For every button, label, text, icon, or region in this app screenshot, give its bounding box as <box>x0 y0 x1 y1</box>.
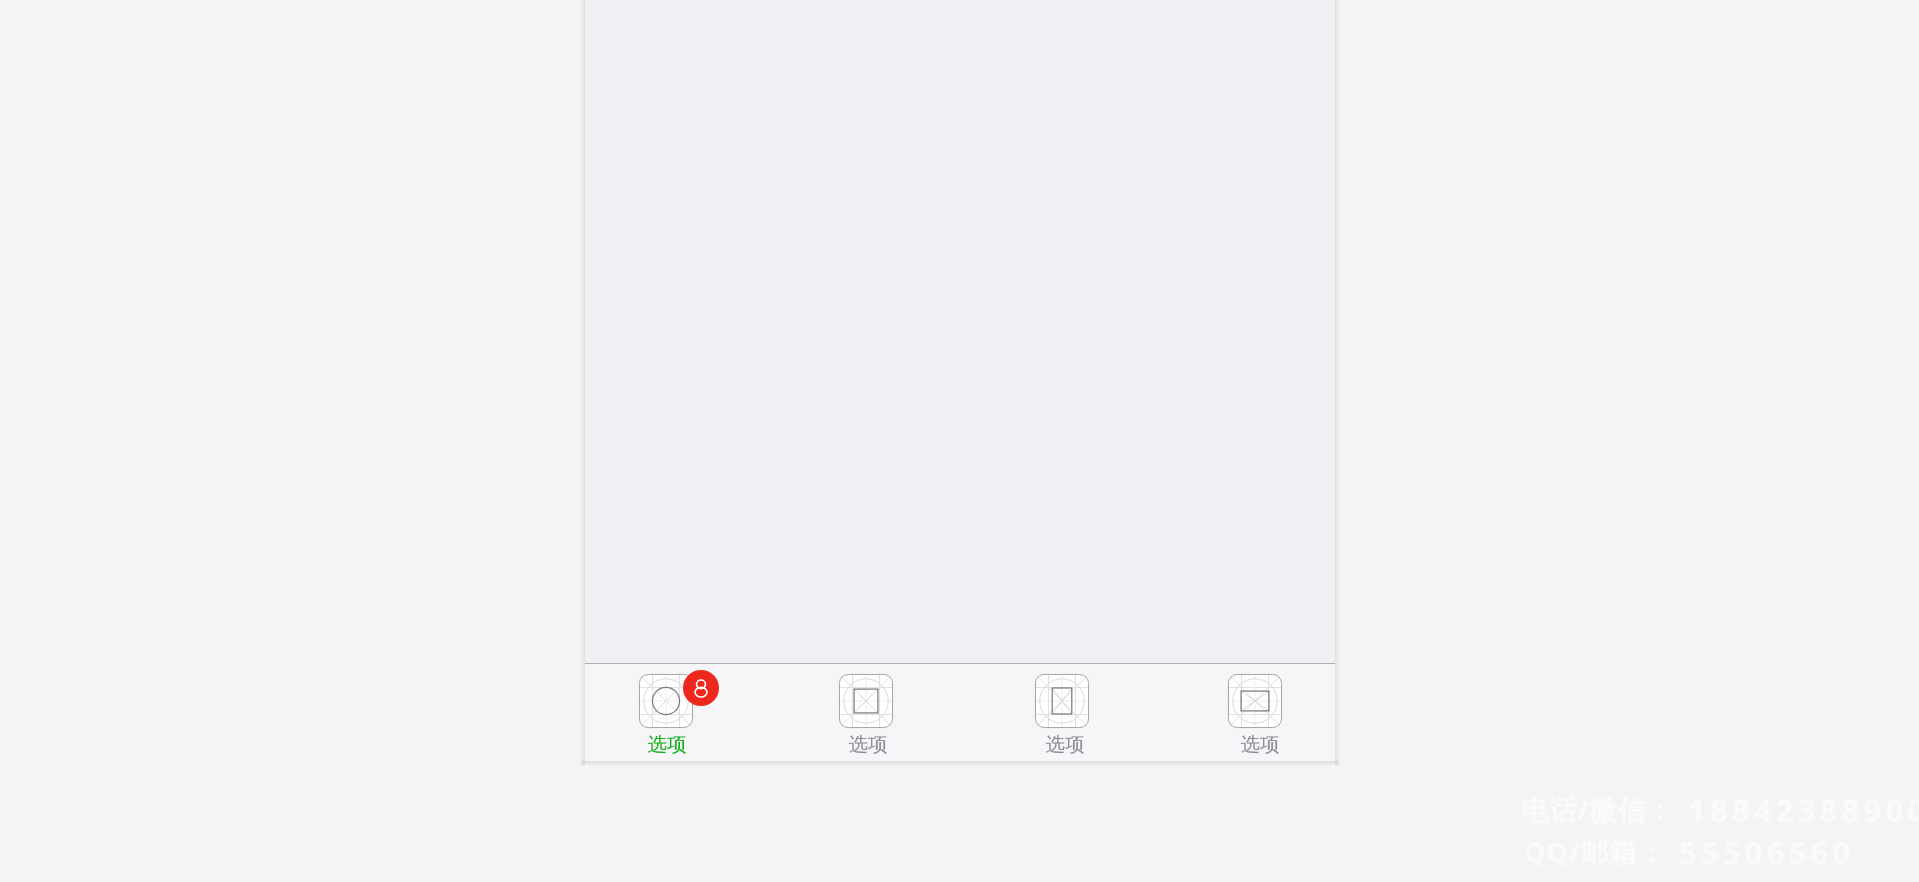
staticText: 选项 <box>848 732 888 757</box>
button[interactable]: 选项 <box>585 664 773 761</box>
staticText: 选项 <box>1240 732 1280 757</box>
staticText: 选项 <box>1045 732 1085 757</box>
button[interactable]: 选项 <box>1148 664 1336 761</box>
button[interactable]: 选项 <box>773 664 961 761</box>
other: 8 unread <box>683 670 719 706</box>
staticText: 选项 <box>647 732 687 757</box>
button[interactable]: 选项 <box>960 664 1148 761</box>
